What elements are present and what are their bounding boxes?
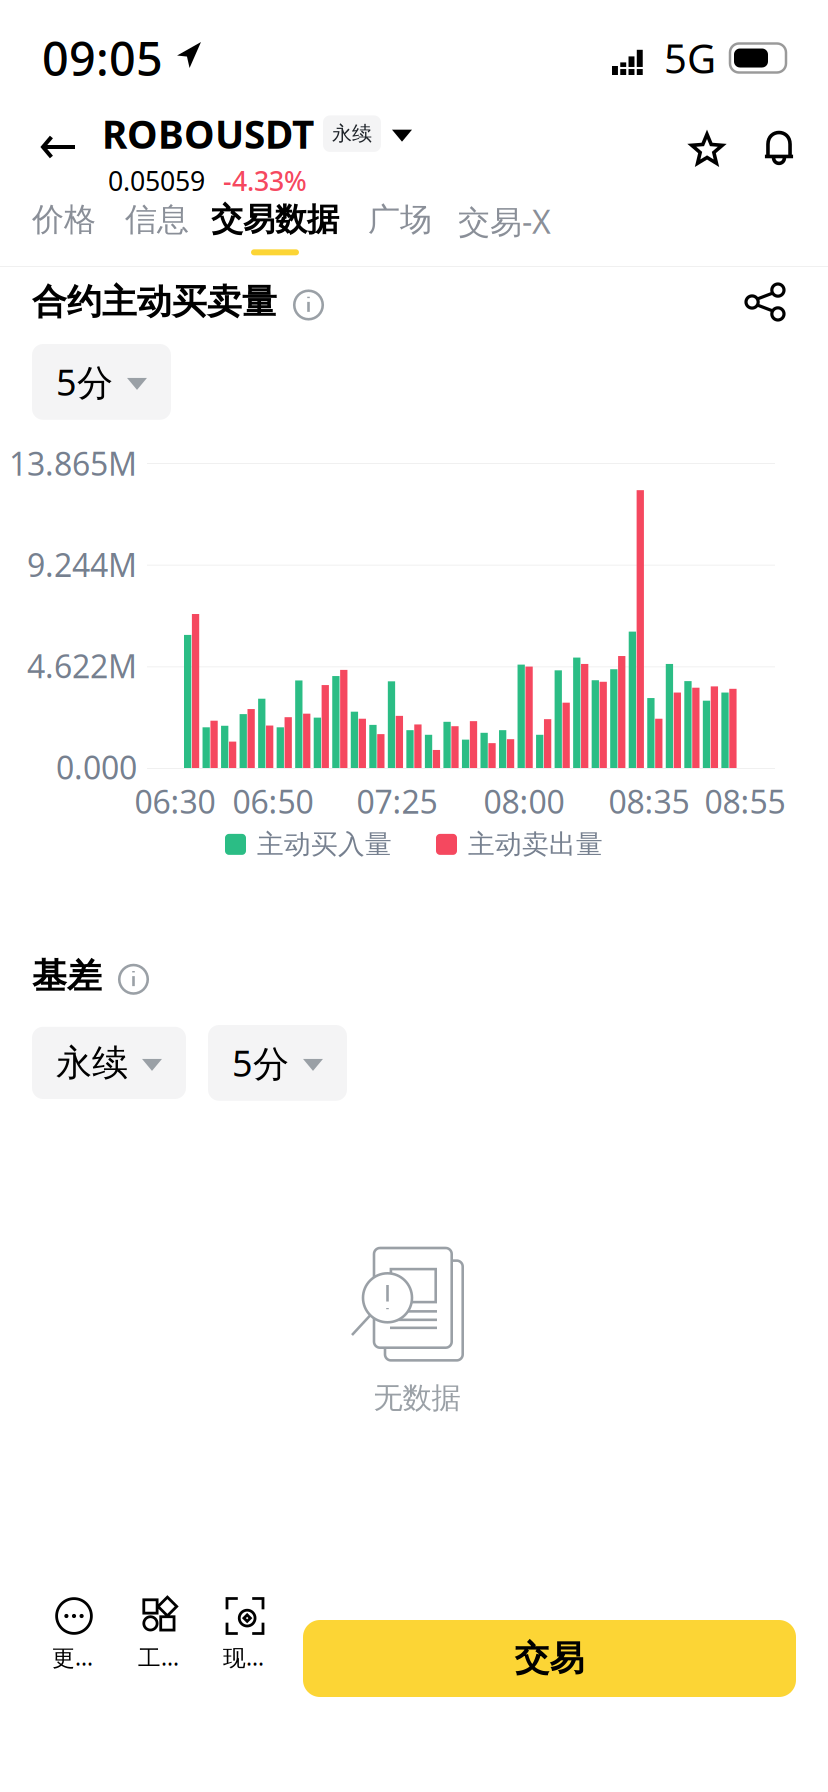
staticText: 更多 bbox=[52, 1642, 96, 1672]
button[interactable]: Back bbox=[23, 119, 93, 175]
staticText: 08:55 bbox=[704, 780, 785, 822]
staticText: 06:30 bbox=[134, 780, 215, 822]
staticText: 9.244M bbox=[27, 543, 137, 586]
staticText: 永续 bbox=[56, 1041, 128, 1085]
button[interactable]: 现货 bbox=[223, 1596, 267, 1672]
staticText: 交易 bbox=[514, 1637, 584, 1680]
button[interactable]: 交易-X bbox=[458, 200, 551, 258]
button[interactable]: 广场 bbox=[368, 200, 432, 255]
button[interactable]: Favorite bbox=[673, 115, 741, 183]
staticText: 13.865M bbox=[9, 442, 137, 484]
staticText: 主动买入量 bbox=[257, 828, 392, 861]
staticText: 现货 bbox=[223, 1642, 267, 1672]
staticText: ROBOUSDT bbox=[102, 108, 314, 159]
staticText: 08:35 bbox=[608, 780, 689, 822]
staticText: 合约主动买卖量 bbox=[32, 281, 277, 323]
staticText: 信息 bbox=[125, 200, 189, 239]
staticText: 0.05059 bbox=[108, 163, 205, 198]
button[interactable]: 信息 bbox=[125, 200, 189, 255]
staticText: 永续 bbox=[332, 121, 372, 146]
staticText: 交易数据 bbox=[211, 200, 339, 239]
staticText: 08:00 bbox=[483, 780, 564, 822]
staticText: 5G bbox=[664, 31, 716, 84]
staticText: -4.33% bbox=[223, 163, 307, 198]
button[interactable]: 更多 bbox=[52, 1596, 96, 1672]
staticText: 09:05 bbox=[42, 27, 163, 89]
button[interactable]: Alerts bbox=[745, 114, 813, 184]
staticText: 0.000 bbox=[56, 746, 137, 788]
button[interactable]: 工具 bbox=[138, 1596, 182, 1672]
button[interactable]: Share bbox=[734, 272, 796, 332]
button[interactable]: 5分 bbox=[208, 1025, 347, 1101]
staticText: 广场 bbox=[368, 200, 432, 239]
staticText: 07:25 bbox=[356, 780, 437, 822]
button[interactable]: 价格 bbox=[32, 200, 96, 255]
staticText: 交易-X bbox=[458, 200, 551, 242]
button[interactable]: 交易数据 bbox=[211, 200, 339, 255]
staticText: 5分 bbox=[232, 1039, 289, 1087]
staticText: 工具 bbox=[138, 1642, 182, 1672]
staticText: 4.622M bbox=[27, 645, 137, 687]
staticText: 基差 bbox=[32, 955, 102, 998]
staticText: 5分 bbox=[56, 358, 113, 406]
staticText: 06:50 bbox=[232, 780, 313, 822]
staticText: 主动卖出量 bbox=[468, 828, 603, 861]
button[interactable]: 5分 bbox=[32, 344, 171, 420]
staticText: 价格 bbox=[32, 200, 96, 239]
button[interactable]: 交易 bbox=[303, 1620, 796, 1697]
staticText: 无数据 bbox=[373, 1380, 460, 1416]
button[interactable]: 永续 bbox=[32, 1027, 186, 1099]
